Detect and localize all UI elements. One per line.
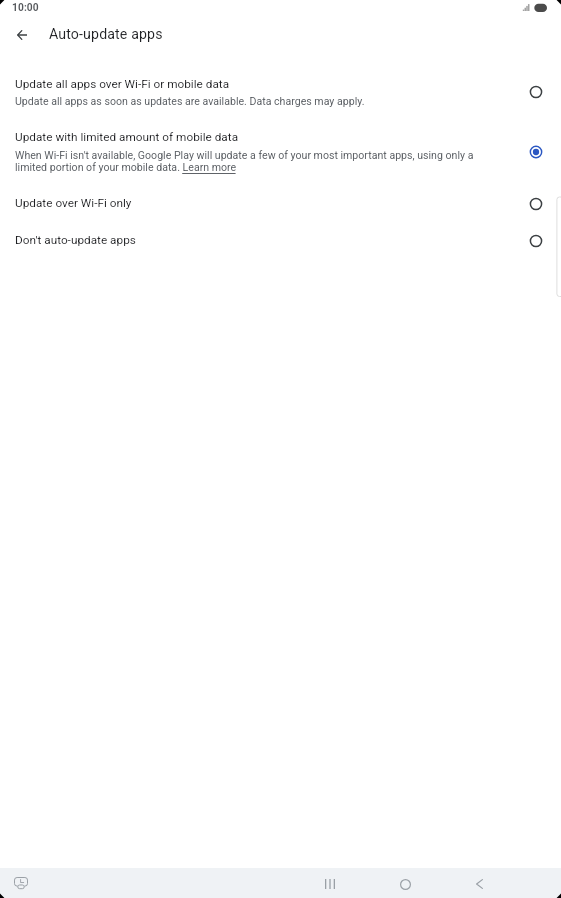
staticText: When Wi-Fi isn't available, Google Play …: [15, 149, 485, 173]
button[interactable]: Not selected: [522, 190, 550, 218]
button[interactable]: Not selected: [522, 227, 550, 255]
button[interactable]: Home: [368, 869, 442, 898]
button[interactable]: Not selected: [522, 78, 550, 106]
button[interactable]: Recent apps: [293, 869, 367, 898]
button[interactable]: Update with limited amount of mobile dat…: [0, 119, 561, 184]
staticText: Auto-update apps: [49, 26, 163, 43]
staticText: Update over Wi-Fi only: [15, 196, 132, 210]
button[interactable]: Back: [442, 869, 516, 898]
button[interactable]: Learn more: [182, 161, 237, 174]
button[interactable]: Update over Wi-Fi only: [0, 184, 561, 220]
staticText: Update all apps over Wi-Fi or mobile dat…: [15, 77, 230, 91]
button[interactable]: Navigate up: [10, 23, 34, 47]
button[interactable]: Change keyboard: [14, 877, 28, 889]
staticText: Don't auto-update apps: [15, 233, 136, 247]
button[interactable]: Update all apps over Wi-Fi or mobile dat…: [0, 68, 561, 119]
staticText: Update all apps as soon as updates are a…: [15, 95, 485, 107]
staticText: 10:00: [12, 2, 39, 14]
button[interactable]: Selected: [522, 138, 550, 166]
button[interactable]: Don't auto-update apps: [0, 220, 561, 256]
staticText: Update with limited amount of mobile dat…: [15, 130, 239, 144]
